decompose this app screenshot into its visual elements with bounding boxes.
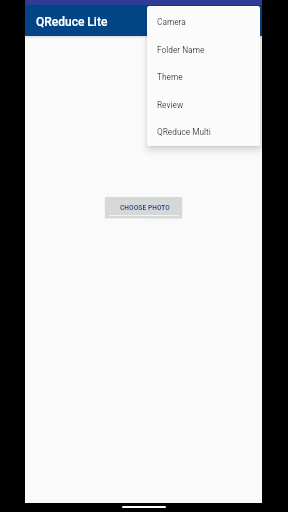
button[interactable]: Folder Name [147,34,260,62]
staticText: Camera [157,17,186,27]
button[interactable]: QReduce Multi [147,116,260,144]
staticText: Theme [157,72,183,82]
button[interactable]: Theme [147,61,260,89]
staticText: QReduce Multi [157,127,211,137]
staticText: QReduce Lite [36,15,108,29]
button[interactable]: CHOOSE PHOTO [105,197,182,218]
button[interactable]: Review [147,89,260,117]
staticText: Folder Name [157,45,205,55]
button[interactable]: More options [236,5,262,36]
staticText: CHOOSE PHOTO [120,204,170,212]
button[interactable]: Camera [147,6,260,34]
staticText: Review [157,100,184,110]
